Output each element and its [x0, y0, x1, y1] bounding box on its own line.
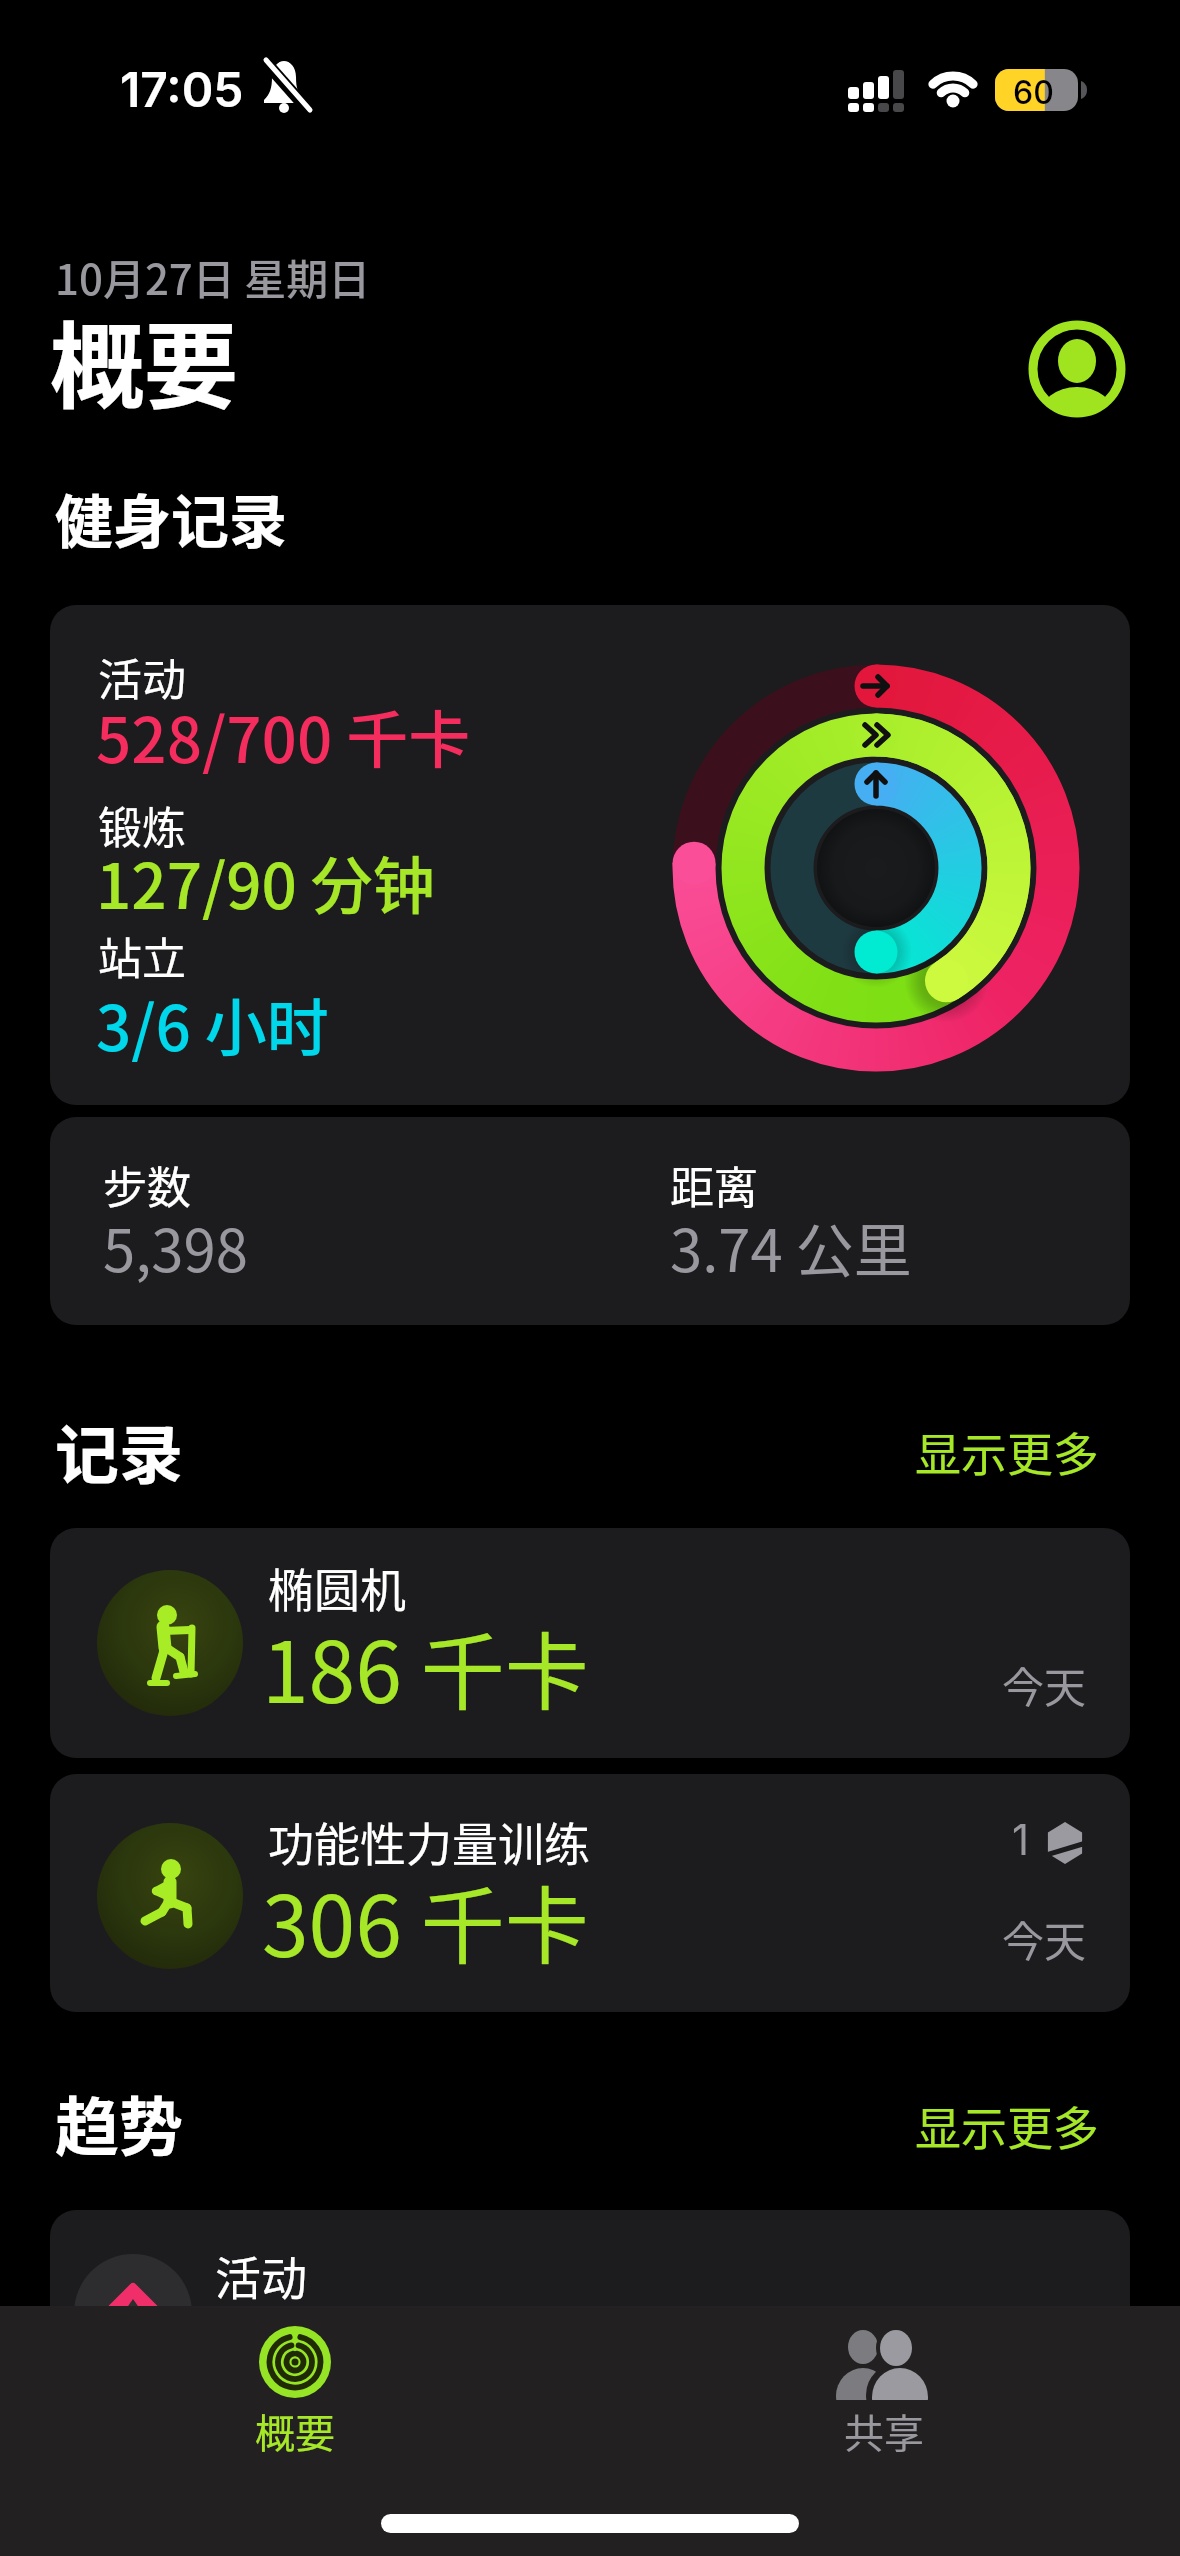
staticText: 3.74 公里	[670, 1205, 912, 1289]
staticText: 3/6 小时	[96, 979, 329, 1069]
staticText: 椭圆机	[268, 1554, 406, 1621]
button[interactable]	[215, 2310, 375, 2460]
button[interactable]: 活动	[50, 2210, 1130, 2556]
button[interactable]	[804, 2310, 964, 2460]
button[interactable]: 功能性力量训练	[50, 1774, 1130, 2012]
staticText: 站立	[98, 924, 186, 988]
staticText: 活动	[215, 2242, 307, 2309]
staticText: 概要	[255, 2402, 335, 2460]
staticText: 127/90 分钟	[96, 837, 435, 927]
staticText: 功能性力量训练	[268, 1808, 590, 1875]
staticText: 共享	[844, 2402, 924, 2460]
staticText: 306 千卡	[262, 1860, 589, 1982]
button[interactable]: 活动	[50, 605, 1130, 1105]
staticText: 17:05	[120, 60, 244, 118]
staticText: 距离	[670, 1153, 758, 1217]
button[interactable]	[1029, 321, 1125, 417]
button[interactable]: 步数	[50, 1117, 1130, 1325]
staticText: 记录	[55, 1404, 183, 1497]
staticText: 10月27日 星期日	[55, 246, 371, 307]
staticText: 步数	[103, 1153, 191, 1217]
staticText: 186 千卡	[262, 1606, 589, 1728]
staticText: 5,398	[103, 1205, 248, 1289]
staticText: 60	[1013, 73, 1054, 112]
staticText: 健身记录	[55, 476, 288, 560]
button[interactable]: 椭圆机	[50, 1528, 1130, 1758]
staticText: 活动	[98, 645, 186, 709]
staticText: 528/700 千卡	[96, 691, 471, 781]
staticText: 1	[1012, 1814, 1030, 1865]
staticText: 概要	[50, 292, 239, 428]
staticText: 今天	[1002, 1654, 1087, 1715]
staticText: 今天	[1002, 1908, 1087, 1969]
staticText: 趋势	[55, 2076, 183, 2169]
staticText: 锻炼	[98, 793, 186, 857]
